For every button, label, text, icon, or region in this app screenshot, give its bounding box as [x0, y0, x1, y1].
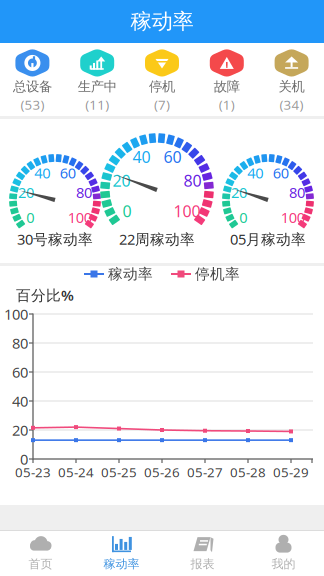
staticText: 20	[18, 182, 34, 202]
staticText: 05月稼动率	[230, 229, 306, 249]
staticText: 40	[132, 146, 150, 167]
staticText: 60	[273, 163, 289, 182]
staticText: (53)	[20, 96, 44, 113]
staticText: 100	[173, 200, 200, 222]
staticText: (34)	[280, 96, 304, 113]
staticText: 05-29	[273, 463, 309, 481]
staticText: 40	[34, 163, 50, 182]
staticText: 80	[12, 333, 28, 353]
button[interactable]: 关机	[259, 43, 324, 116]
staticText: 我的	[271, 557, 295, 571]
staticText: 100	[68, 207, 92, 227]
staticText: 首页	[28, 557, 52, 571]
staticText: 停机	[149, 78, 175, 95]
staticText: 100	[4, 304, 28, 324]
staticText: 100	[281, 207, 305, 227]
staticText: 20	[113, 170, 131, 191]
staticText: 80	[289, 182, 305, 202]
button[interactable]: 我的	[243, 527, 324, 576]
staticText: 20	[12, 420, 28, 440]
staticText: 05-26	[144, 463, 180, 481]
staticText: 05-27	[187, 463, 223, 481]
staticText: 05-28	[230, 463, 266, 481]
staticText: (7)	[154, 96, 170, 113]
staticText: (11)	[85, 96, 109, 113]
button[interactable]: 首页	[0, 527, 81, 576]
staticText: 百分比%	[16, 285, 74, 305]
staticText: 40	[12, 391, 28, 411]
staticText: 40	[247, 163, 263, 182]
staticText: 稼动率	[130, 8, 193, 35]
staticText: 报表	[190, 557, 214, 571]
staticText: 停机率	[195, 265, 240, 283]
staticText: 稼动率	[103, 557, 139, 571]
staticText: 60	[163, 146, 181, 167]
staticText: 05-24	[58, 463, 94, 481]
staticText: 0	[20, 449, 28, 469]
staticText: 0	[26, 207, 34, 227]
staticText: 05-25	[101, 463, 137, 481]
button[interactable]: 稼动率	[81, 527, 162, 576]
staticText: 关机	[279, 78, 305, 95]
staticText: 20	[231, 182, 247, 202]
staticText: 30号稼动率	[17, 229, 93, 249]
staticText: 05-23	[15, 463, 51, 481]
staticText: 故障	[214, 78, 240, 95]
staticText: 总设备	[13, 78, 52, 95]
staticText: 0	[239, 207, 247, 227]
staticText: 80	[183, 170, 201, 191]
staticText: 生产中	[78, 78, 117, 95]
staticText: 稼动率	[108, 265, 153, 283]
staticText: 0	[122, 200, 131, 222]
staticText: 60	[12, 362, 28, 382]
button[interactable]: 停机	[130, 43, 194, 116]
staticText: 60	[60, 163, 76, 182]
button[interactable]: 故障	[194, 43, 259, 116]
staticText: (1)	[219, 96, 235, 113]
button[interactable]: 报表	[162, 527, 243, 576]
button[interactable]: 生产中	[65, 43, 130, 116]
staticText: 80	[76, 182, 92, 202]
button[interactable]: 总设备	[0, 43, 65, 116]
staticText: 22周稼动率	[119, 229, 195, 249]
